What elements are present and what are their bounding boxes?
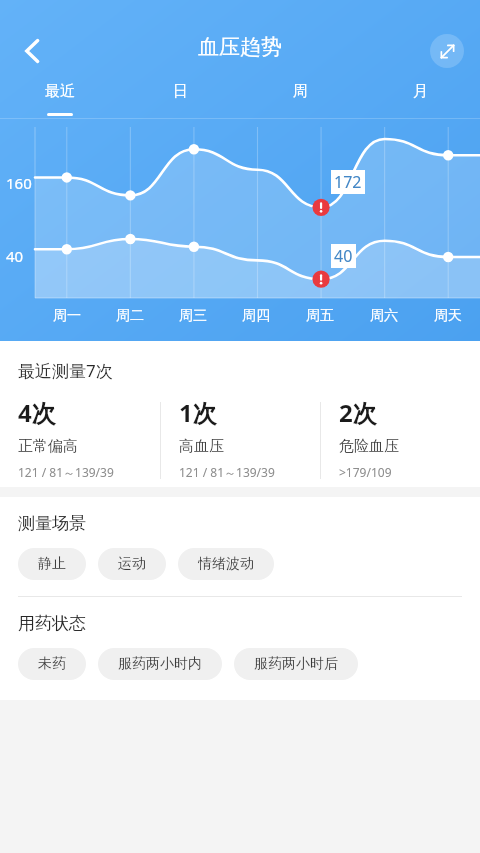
staticText: 正常偏高 [18, 437, 78, 456]
staticText: 高血压 [179, 437, 224, 456]
button[interactable]: 未药 [18, 648, 86, 680]
staticText: 121 / 81～139/39 [18, 464, 114, 480]
staticText: 未药 [38, 655, 66, 673]
staticText: 月 [413, 82, 428, 101]
staticText: >179/109 [339, 464, 392, 480]
staticText: 周六 [370, 307, 398, 325]
staticText: 周五 [306, 307, 334, 325]
staticText: 160 [6, 173, 32, 193]
staticText: 运动 [118, 555, 146, 573]
button[interactable]: 服药两小时后 [234, 648, 358, 680]
staticText: 最近 [45, 82, 75, 101]
button[interactable]: 静止 [18, 548, 86, 580]
staticText: 周四 [242, 307, 270, 325]
staticText: 静止 [38, 555, 66, 573]
button[interactable]: Fullscreen [430, 34, 464, 68]
staticText: 4次 [18, 396, 56, 429]
staticText: 周一 [53, 307, 81, 325]
staticText: 172 [334, 171, 362, 193]
staticText: 周天 [434, 307, 462, 325]
button[interactable]: 最近 [0, 82, 120, 116]
staticText: 用药状态 [18, 613, 86, 634]
staticText: 测量场景 [18, 513, 86, 534]
staticText: 最近测量7次 [18, 359, 113, 382]
button[interactable]: 运动 [98, 548, 166, 580]
staticText: 40 [6, 246, 24, 266]
button[interactable]: 服药两小时内 [98, 648, 222, 680]
button[interactable]: 1次 [161, 394, 320, 487]
button[interactable]: 月 [360, 82, 480, 116]
staticText: 危险血压 [339, 437, 399, 456]
button[interactable]: Back [6, 24, 60, 78]
button[interactable]: 2次 [321, 394, 480, 487]
staticText: 服药两小时后 [254, 655, 338, 673]
staticText: 周三 [179, 307, 207, 325]
button[interactable]: 周 [240, 82, 360, 116]
staticText: 周 [293, 82, 308, 101]
button[interactable]: 4次 [0, 394, 160, 487]
staticText: 周二 [116, 307, 144, 325]
staticText: 121 / 81～139/39 [179, 464, 275, 480]
staticText: 情绪波动 [198, 555, 254, 573]
staticText: 日 [173, 82, 188, 101]
staticText: 血压趋势 [198, 34, 282, 60]
button[interactable]: 日 [120, 82, 240, 116]
button[interactable]: 情绪波动 [178, 548, 274, 580]
staticText: 1次 [179, 396, 217, 429]
staticText: 2次 [339, 396, 377, 429]
staticText: 服药两小时内 [118, 655, 202, 673]
staticText: 40 [334, 245, 353, 267]
